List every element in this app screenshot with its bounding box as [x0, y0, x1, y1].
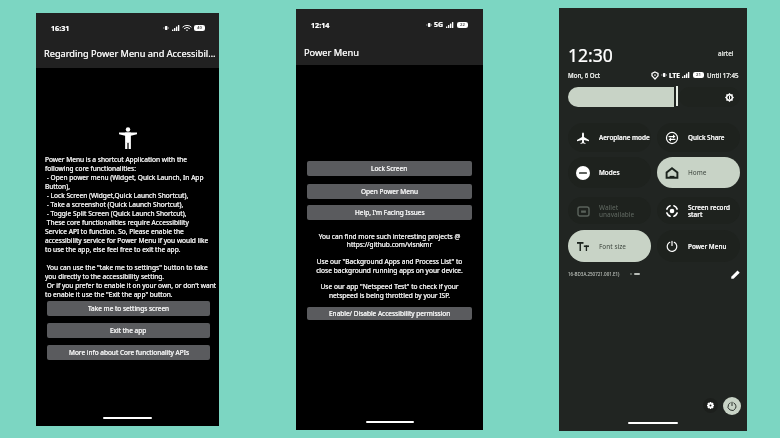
button[interactable]: Font size	[568, 230, 651, 262]
staticText: Until 17:45	[707, 71, 739, 79]
staticText: Take me to settings screen	[88, 304, 170, 313]
button[interactable]: Settings	[703, 398, 718, 413]
button[interactable]: Aeroplane mode	[568, 123, 651, 152]
staticText: Power Menu	[304, 46, 360, 59]
staticText: 16:31	[51, 23, 70, 33]
staticText: 5G	[434, 20, 444, 30]
staticText: Help, I'm Facing Issues	[355, 208, 425, 217]
button[interactable]: Lock Screen	[307, 161, 472, 176]
staticText: 22	[460, 22, 465, 28]
staticText: Power Menu is a shortcut Application wit…	[45, 155, 221, 299]
staticText: Modes	[599, 168, 651, 177]
staticText: More info about Core functionality APIs	[69, 348, 189, 357]
staticText: airtel	[718, 49, 734, 57]
button[interactable]: Auto brightness	[679, 87, 740, 107]
staticText: 12:30	[568, 43, 613, 67]
staticText: 12:14	[311, 20, 330, 30]
staticText: 40	[197, 25, 202, 31]
staticText: 21	[696, 72, 701, 78]
staticText: 16-BD3A.250721.001.E1)	[568, 271, 620, 277]
staticText: Font size	[599, 242, 651, 251]
staticText: Open Power Menu	[361, 187, 418, 196]
staticText: Lock Screen	[371, 164, 408, 173]
button[interactable]: Home	[657, 157, 740, 188]
staticText: Use our app "Netspeed Test" to check if …	[303, 282, 476, 300]
staticText: Aeroplane mode	[599, 133, 651, 142]
button[interactable]: Exit the app	[47, 323, 210, 338]
button[interactable]: Help, I'm Facing Issues	[307, 205, 472, 220]
staticText: Use our "Background Apps and Process Lis…	[303, 257, 476, 275]
button[interactable]: Screen record start	[657, 197, 740, 224]
button[interactable]: Enable/ Disable Accessibility permission	[307, 307, 472, 320]
staticText: Enable/ Disable Accessibility permission	[329, 309, 451, 318]
staticText: You can find more such interesting proje…	[303, 232, 476, 249]
staticText: Regarding Power Menu and Accessibility S…	[44, 47, 216, 60]
button[interactable]: Edit	[730, 269, 740, 279]
staticText: LTE	[669, 71, 680, 79]
button[interactable]: Wallet unavailable	[568, 197, 651, 224]
button[interactable]: Take me to settings screen	[47, 301, 210, 316]
button[interactable]: More info about Core functionality APIs	[47, 345, 210, 360]
staticText: Screen record start	[688, 203, 740, 219]
staticText: Exit the app	[110, 326, 147, 335]
staticText: Home	[688, 168, 740, 177]
button[interactable]: Modes	[568, 157, 651, 188]
button[interactable]: Quick Share	[657, 123, 740, 152]
button[interactable]: Brightness	[568, 87, 674, 107]
staticText: Quick Share	[688, 133, 740, 142]
staticText: Wallet unavailable	[599, 203, 651, 219]
staticText: Mon, 6 Oct	[568, 71, 601, 79]
button[interactable]: Power Menu	[657, 230, 740, 262]
button[interactable]: Power	[723, 397, 741, 415]
staticText: Power Menu	[688, 242, 740, 251]
button[interactable]: Open Power Menu	[307, 184, 472, 199]
